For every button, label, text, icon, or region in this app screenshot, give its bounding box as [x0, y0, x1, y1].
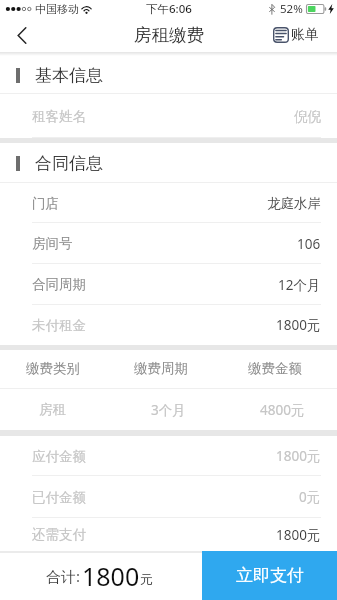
staticText: 缴费周期 [134, 360, 188, 377]
button[interactable]: 立即支付 [202, 551, 337, 600]
button[interactable]: 门店 [0, 183, 337, 223]
button[interactable]: 已付金额 [0, 476, 337, 518]
staticText: 合计: [46, 566, 81, 586]
staticText: 倪倪 [294, 108, 321, 125]
staticText: 房间号 [32, 235, 73, 252]
staticText: 租客姓名 [32, 108, 86, 125]
staticText: 房租缴费 [134, 24, 204, 46]
staticText: 龙庭水岸 [267, 195, 321, 212]
button[interactable]: 合同周期 [0, 264, 337, 305]
staticText: 1800元 [276, 526, 321, 544]
button[interactable]: 账单 [273, 18, 319, 52]
staticText: 还需支付 [32, 526, 86, 543]
staticText: 账单 [291, 26, 319, 44]
staticText: 立即支付 [236, 565, 304, 586]
staticText: 4800元 [260, 401, 305, 419]
staticText: 门店 [32, 195, 59, 212]
staticText: 中国移动 [35, 2, 79, 16]
staticText: 106 [297, 235, 321, 253]
button[interactable]: 返回 [0, 18, 44, 52]
staticText: 12个月 [278, 276, 321, 294]
staticText: 0元 [299, 488, 321, 506]
staticText: 未付租金 [32, 317, 86, 334]
button[interactable]: 还需支付 [0, 518, 337, 551]
button[interactable]: 未付租金 [0, 305, 337, 345]
button[interactable]: 租客姓名 [0, 94, 337, 138]
staticText: 已付金额 [32, 489, 86, 506]
staticText: 应付金额 [32, 448, 86, 465]
button[interactable]: 应付金额 [0, 436, 337, 476]
staticText: 3个月 [151, 401, 186, 419]
staticText: 合同周期 [32, 276, 86, 293]
button[interactable]: 房租 [0, 389, 337, 430]
staticText: 基本信息 [35, 65, 103, 86]
staticText: 52% [280, 1, 303, 17]
staticText: 下午6:06 [146, 1, 192, 17]
staticText: 1800元 [276, 316, 321, 334]
button[interactable]: 房间号 [0, 223, 337, 264]
staticText: 1800 [82, 559, 140, 593]
staticText: 缴费金额 [248, 360, 302, 377]
staticText: 合同信息 [35, 153, 103, 174]
staticText: 1800元 [276, 447, 321, 465]
staticText: 房租 [39, 401, 66, 418]
staticText: 缴费类别 [26, 360, 80, 377]
staticText: 元 [140, 571, 153, 587]
